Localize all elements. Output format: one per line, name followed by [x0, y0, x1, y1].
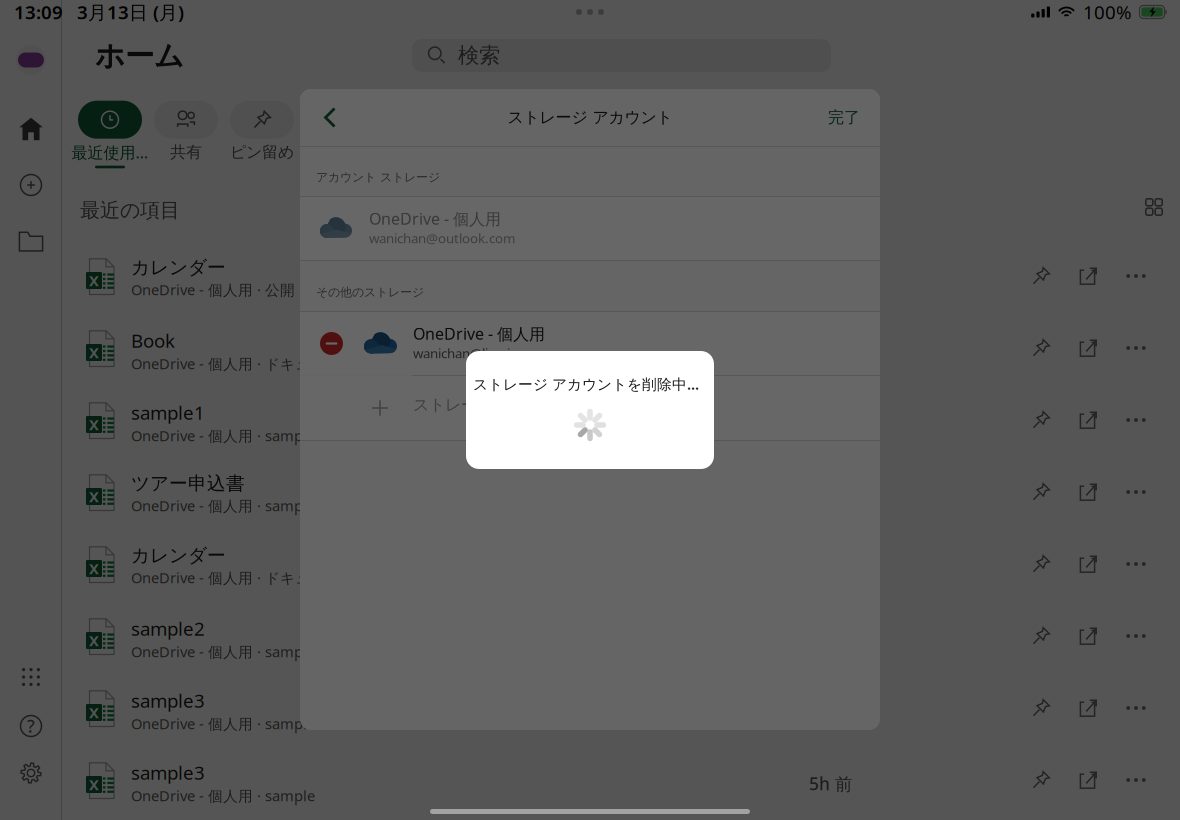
staticText: OneDrive - 個人用 · ドキュメント — [131, 568, 355, 587]
staticText: 検索 — [458, 42, 500, 69]
staticText: アカウント ストレージ — [316, 170, 440, 185]
staticText: カレンダー — [131, 544, 226, 567]
button[interactable]: Open — [18, 228, 44, 254]
button[interactable]: Settings — [19, 761, 43, 785]
button[interactable]: X — [62, 744, 1180, 816]
staticText: OneDrive - 個人用 · sample — [131, 496, 315, 515]
staticText: X — [89, 271, 99, 290]
staticText: wanichan@live.jp — [413, 344, 518, 362]
staticText: 13:09 — [14, 0, 63, 24]
button[interactable]: 最近使用… — [72, 101, 148, 168]
staticText: ホーム — [95, 38, 184, 74]
staticText: OneDrive - 個人用 — [369, 208, 501, 229]
staticText: sample3 — [131, 760, 205, 785]
staticText: ? — [27, 714, 35, 737]
button[interactable]: X — [62, 240, 1180, 312]
button[interactable]: New file — [19, 173, 43, 197]
button[interactable]: Account — [14, 43, 48, 77]
button[interactable]: Grid view — [1132, 185, 1176, 229]
staticText: OneDrive - 個人用 — [413, 323, 545, 344]
staticText: OneDrive - 個人用 · sample — [131, 642, 315, 661]
staticText: sample3 — [131, 688, 205, 713]
staticText: 最近の項目 — [80, 198, 180, 223]
staticText: 完了 — [828, 108, 860, 127]
staticText: OneDrive - 個人用 · ドキュメント — [131, 354, 355, 373]
button[interactable]: OneDrive - 個人用 — [300, 197, 880, 260]
staticText: 共有 — [170, 142, 202, 162]
button[interactable]: X — [62, 672, 1180, 744]
staticText: OneDrive - 個人用 · sample — [131, 426, 315, 445]
staticText: ツアー申込書 — [131, 472, 245, 495]
button[interactable]: 完了 — [818, 89, 870, 145]
staticText: Book — [131, 328, 175, 353]
button[interactable]: X — [62, 312, 1180, 384]
staticText: X — [89, 343, 99, 362]
button[interactable]: 共有 — [148, 101, 224, 168]
staticText: X — [89, 631, 99, 650]
staticText: wanichan@outlook.com — [369, 229, 515, 247]
staticText: 5h 前 — [809, 772, 852, 795]
staticText: X — [89, 775, 99, 794]
staticText: ピン留め — [230, 142, 294, 162]
staticText: ストレージ アカウントを削除中... — [473, 374, 699, 394]
button[interactable]: Help — [19, 714, 43, 738]
staticText: OneDrive - 個人用 · 公開 — [131, 280, 295, 299]
button[interactable]: ストレージ アカウントの追加 — [300, 376, 880, 440]
staticText: ストレージ アカウントの追加 — [413, 395, 626, 415]
staticText: OneDrive - 個人用 · sample — [131, 786, 315, 805]
staticText: その他のストレージ — [316, 285, 424, 300]
staticText: X — [89, 703, 99, 722]
staticText: X — [89, 559, 99, 578]
staticText: OneDrive - 個人用 · sample — [131, 714, 315, 733]
staticText: 100% — [1083, 0, 1132, 24]
button[interactable]: X — [62, 600, 1180, 672]
button[interactable]: X — [62, 528, 1180, 600]
button[interactable]: Back — [308, 89, 352, 145]
button[interactable]: X — [62, 456, 1180, 528]
staticText: X — [89, 415, 99, 434]
staticText: 3月13日 (月) — [77, 0, 184, 24]
staticText: sample2 — [131, 616, 205, 641]
button[interactable]: ピン留め — [224, 101, 300, 168]
staticText: カレンダー — [131, 256, 226, 279]
staticText: 最近使用… — [71, 142, 148, 163]
button[interactable]: OneDrive - 個人用 — [300, 312, 880, 375]
staticText: sample1 — [131, 400, 205, 425]
button[interactable]: Apps — [19, 665, 43, 689]
staticText: X — [89, 487, 99, 506]
staticText: ストレージ アカウント — [507, 108, 672, 127]
button[interactable]: Home — [18, 116, 44, 142]
button[interactable]: X — [62, 384, 1180, 456]
